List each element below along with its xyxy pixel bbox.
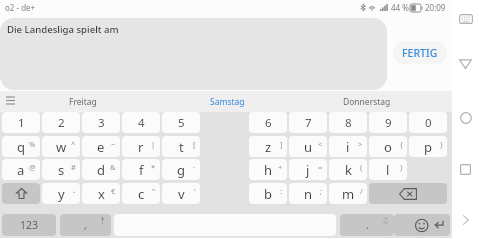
- staticText: m: [342, 185, 355, 203]
- staticText: {: [400, 139, 403, 149]
- staticText: f: [139, 161, 144, 179]
- staticText: |: [151, 139, 156, 149]
- staticText: e: [97, 138, 105, 156]
- staticText: d: [97, 161, 105, 179]
- button[interactable]: s: [42, 159, 80, 180]
- button[interactable]: Donnerstag: [305, 91, 429, 112]
- staticText: q: [17, 138, 25, 156]
- button[interactable]: b: [249, 183, 287, 204]
- staticText: 3: [98, 115, 105, 131]
- staticText: =: [318, 162, 323, 172]
- button[interactable]: y: [42, 183, 80, 204]
- button[interactable]: ,: [60, 214, 111, 236]
- button[interactable]: Home: [455, 107, 476, 128]
- staticText: #: [71, 162, 76, 172]
- staticText: b: [264, 185, 272, 203]
- staticText: Die Landesliga spielt am: [7, 23, 119, 36]
- staticText: .: [366, 218, 369, 232]
- button[interactable]: i: [329, 136, 367, 157]
- button[interactable]: r: [122, 136, 160, 157]
- button[interactable]: v: [162, 183, 200, 204]
- staticText: &: [110, 162, 116, 172]
- staticText: ": [152, 186, 156, 196]
- button[interactable]: q: [2, 136, 40, 157]
- staticText: 20:09: [425, 2, 446, 13]
- staticText: €: [111, 186, 116, 196]
- staticText: 44 %: [391, 2, 409, 13]
- button[interactable]: 7: [289, 112, 327, 133]
- staticText: %: [29, 139, 36, 149]
- button[interactable]: z: [249, 136, 287, 157]
- button[interactable]: 4: [122, 112, 160, 133]
- button[interactable]: l: [369, 159, 407, 180]
- button[interactable]: n: [289, 183, 327, 204]
- staticText: @: [29, 162, 36, 172]
- button[interactable]: f: [122, 159, 160, 180]
- button[interactable]: k: [329, 159, 367, 180]
- button[interactable]: p: [409, 136, 447, 157]
- staticText: ;: [320, 186, 323, 196]
- staticText: 1: [18, 115, 25, 131]
- button[interactable]: FERTIG: [393, 41, 447, 64]
- button[interactable]: 6: [249, 112, 287, 133]
- staticText: n: [304, 185, 313, 203]
- button[interactable]: o: [369, 136, 407, 157]
- staticText: 6: [265, 115, 272, 131]
- button[interactable]: .: [340, 214, 394, 236]
- button[interactable]: 1: [2, 112, 40, 133]
- staticText: ^: [71, 139, 76, 149]
- button[interactable]: e: [82, 136, 120, 157]
- button[interactable]: Emoji: [394, 214, 450, 236]
- staticText: u: [304, 138, 313, 156]
- staticText: ·: [193, 162, 196, 172]
- button[interactable]: 2: [42, 112, 80, 133]
- staticText: z: [265, 138, 272, 156]
- button[interactable]: Samstag: [165, 91, 289, 112]
- staticText: [: [193, 139, 196, 149]
- button[interactable]: Expand navigation bar: [455, 209, 476, 230]
- button[interactable]: 3: [82, 112, 120, 133]
- staticText: (: [360, 162, 363, 172]
- button[interactable]: 123: [2, 214, 56, 236]
- staticText: FERTIG: [402, 46, 438, 60]
- button[interactable]: m: [329, 183, 367, 204]
- button[interactable]: Keyboard settings: [2, 92, 19, 109]
- button[interactable]: 5: [162, 112, 200, 133]
- staticText: o2 - de+: [5, 2, 36, 13]
- staticText: 5: [178, 115, 185, 131]
- staticText: <: [318, 139, 323, 149]
- button[interactable]: Freitag: [21, 91, 145, 112]
- button[interactable]: a: [2, 159, 40, 180]
- button[interactable]: Backspace: [369, 183, 447, 204]
- button[interactable]: g: [162, 159, 200, 180]
- button[interactable]: Back: [455, 53, 476, 74]
- button[interactable]: x: [82, 183, 120, 204]
- button[interactable]: c: [122, 183, 160, 204]
- button[interactable]: 9: [369, 112, 407, 133]
- button[interactable]: h: [249, 159, 287, 180]
- button[interactable]: t: [162, 136, 200, 157]
- staticText: l: [386, 161, 390, 179]
- staticText: r: [138, 138, 144, 156]
- button[interactable]: j: [289, 159, 327, 180]
- staticText: j: [306, 161, 310, 179]
- staticText: 2: [58, 115, 65, 131]
- button[interactable]: 8: [329, 112, 367, 133]
- staticText: Samstag: [210, 96, 245, 108]
- button[interactable]: Hide keyboard: [455, 8, 476, 29]
- button[interactable]: Shift: [2, 183, 40, 204]
- staticText: 4: [138, 115, 145, 131]
- staticText: w: [56, 138, 67, 156]
- button[interactable]: Die Landesliga spielt am: [0, 18, 387, 90]
- button[interactable]: Recents: [455, 159, 476, 180]
- button[interactable]: u: [289, 136, 327, 157]
- staticText: p: [424, 138, 432, 156]
- staticText: ): [400, 162, 403, 172]
- button[interactable]: d: [82, 159, 120, 180]
- staticText: :: [280, 186, 283, 196]
- staticText: s: [58, 161, 65, 179]
- button[interactable]: 0: [409, 112, 447, 133]
- button[interactable]: w: [42, 136, 80, 157]
- staticText: 8: [345, 115, 352, 131]
